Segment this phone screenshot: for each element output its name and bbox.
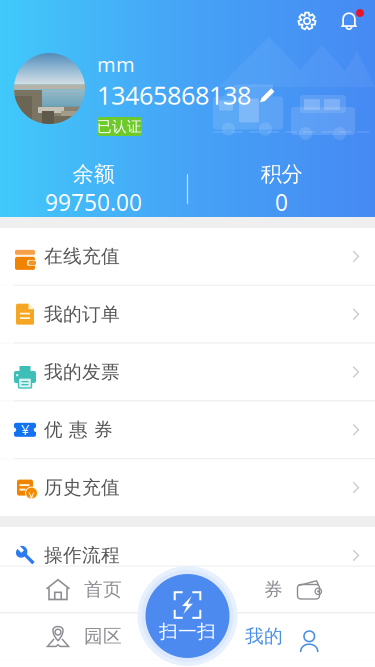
staticText: 园区: [84, 625, 122, 648]
staticText: 我的: [245, 625, 283, 648]
staticText: 券: [264, 578, 283, 601]
button[interactable]: ¥: [0, 459, 375, 516]
staticText: 99750.00: [45, 187, 142, 217]
button[interactable]: 在线充值: [0, 228, 375, 285]
button[interactable]: 余额: [0, 161, 187, 217]
button[interactable]: 已认证: [97, 117, 142, 136]
button[interactable]: 首页: [0, 567, 145, 612]
button[interactable]: 我的发票: [0, 344, 375, 400]
button[interactable]: 园区: [0, 614, 145, 659]
staticText: ¥: [28, 489, 34, 503]
button[interactable]: 我的订单: [0, 286, 375, 343]
button[interactable]: 通知: [329, 3, 369, 39]
staticText: 优 惠 券: [44, 418, 113, 441]
staticText: 0: [275, 187, 288, 217]
button[interactable]: ¥: [0, 401, 375, 458]
staticText: mm: [97, 51, 135, 78]
staticText: 历史充值: [44, 476, 120, 499]
staticText: 我的订单: [44, 303, 120, 326]
button[interactable]: 积分: [188, 161, 375, 217]
staticText: 积分: [261, 161, 303, 187]
button[interactable]: 我的: [230, 614, 375, 659]
staticText: 已认证: [97, 117, 142, 135]
button[interactable]: 操作流程: [0, 527, 375, 584]
button[interactable]: 扫一扫: [137, 566, 237, 666]
staticText: 我的发票: [44, 360, 120, 383]
staticText: 在线充值: [44, 245, 120, 268]
button[interactable]: 券: [230, 567, 375, 612]
staticText: 13465868138: [97, 78, 251, 112]
staticText: 操作流程: [44, 544, 120, 567]
staticText: 余额: [72, 161, 114, 187]
button[interactable]: 设置: [287, 3, 327, 39]
staticText: 首页: [84, 578, 122, 601]
staticText: 扫一扫: [159, 620, 216, 643]
staticText: ¥: [21, 420, 29, 439]
